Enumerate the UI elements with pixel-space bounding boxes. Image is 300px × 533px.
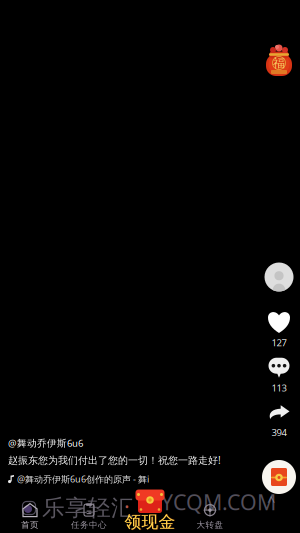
staticText: 福 (273, 55, 285, 70)
staticText: 394 (271, 426, 286, 439)
staticText: 领现金 (124, 512, 175, 532)
staticText: 首页 (21, 520, 39, 530)
button[interactable]: 任务中心 (61, 502, 117, 532)
button[interactable]: 大转盘 (182, 502, 238, 532)
button[interactable]: 首页 (2, 502, 58, 532)
staticText: 任务中心 (71, 520, 107, 530)
staticText: NIYCQM.COM (138, 487, 276, 517)
staticText: @舞动乔伊斯6u6 (8, 436, 83, 450)
staticText: 113 (271, 381, 286, 394)
staticText: 大转盘 (196, 520, 223, 530)
button[interactable]: Profile (257, 257, 300, 297)
staticText: 领现金 (124, 511, 175, 533)
staticText: 乐享轻汇 (42, 494, 134, 522)
button[interactable]: Sound (257, 457, 300, 497)
staticText: 赵振东您为我们付出了您的一切！祝您一路走好! (8, 453, 221, 467)
staticText: · (124, 491, 130, 521)
button[interactable]: 127 (257, 310, 300, 350)
button[interactable]: @舞动乔伊斯6u6 (8, 437, 228, 449)
button[interactable]: Lucky bag (259, 37, 299, 81)
staticText: ^ (267, 491, 275, 511)
staticText: @舞动乔伊斯6u6创作的原声 - 舞i (17, 473, 149, 485)
button[interactable]: 394 (257, 402, 300, 442)
button[interactable]: 113 (257, 356, 300, 396)
button[interactable]: 领现金 (120, 487, 180, 531)
staticText: 127 (271, 336, 286, 349)
